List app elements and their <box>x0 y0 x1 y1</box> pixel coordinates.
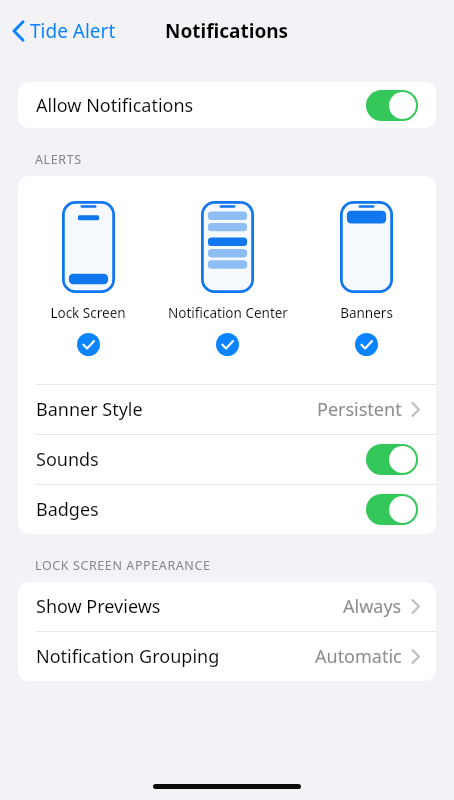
staticText: Automatic <box>315 644 402 669</box>
button[interactable]: Allow Notifications <box>18 82 436 128</box>
staticText: Lock Screen <box>50 304 126 322</box>
staticText: Sounds <box>36 447 99 472</box>
staticText: Allow Notifications <box>36 93 194 118</box>
button[interactable]: Sounds toggle, on <box>366 444 418 475</box>
staticText: LOCK SCREEN APPEARANCE <box>35 557 211 574</box>
button[interactable]: Banner Style <box>18 385 436 434</box>
staticText: ALERTS <box>35 151 82 168</box>
button[interactable]: Notification Center <box>158 176 297 356</box>
button[interactable]: Banners <box>297 176 436 356</box>
button[interactable]: Lock Screen <box>18 176 158 356</box>
other: Lock Screen enabled <box>77 333 100 356</box>
button[interactable]: Allow Notifications toggle, on <box>366 90 418 121</box>
button[interactable]: Notification Grouping <box>18 632 436 681</box>
other: Banners enabled <box>355 333 378 356</box>
other: Notification Center enabled <box>216 333 239 356</box>
staticText: Notifications <box>165 18 289 44</box>
staticText: Persistent <box>317 397 402 422</box>
staticText: Banner Style <box>36 397 143 422</box>
button[interactable]: Tide Alert <box>6 12 122 50</box>
staticText: Badges <box>36 497 99 522</box>
staticText: Tide Alert <box>30 18 116 44</box>
staticText: Banners <box>340 304 393 322</box>
staticText: Always <box>343 594 402 619</box>
staticText: Show Previews <box>36 594 161 619</box>
button[interactable]: Sounds <box>18 435 436 484</box>
staticText: Notification Center <box>168 304 288 322</box>
button[interactable]: Badges toggle, on <box>366 494 418 525</box>
button[interactable]: Show Previews <box>18 582 436 631</box>
staticText: Notification Grouping <box>36 644 220 669</box>
button[interactable]: Badges <box>18 485 436 534</box>
